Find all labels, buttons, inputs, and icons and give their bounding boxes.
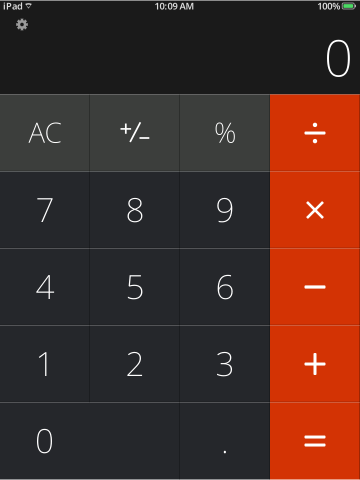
staticText: 1 xyxy=(35,341,54,385)
staticText: 4 xyxy=(35,264,54,308)
button[interactable]: AC xyxy=(0,94,90,171)
button[interactable]: 0 xyxy=(0,402,180,479)
button[interactable]: 8 xyxy=(90,171,180,248)
button[interactable]: 3 xyxy=(180,325,270,402)
button[interactable]: 6 xyxy=(180,248,270,325)
button[interactable]: 5 xyxy=(90,248,180,325)
button[interactable]: 7 xyxy=(0,171,90,248)
button[interactable]: . xyxy=(180,402,270,479)
staticText: 6 xyxy=(215,264,234,308)
button[interactable] xyxy=(270,325,360,402)
staticText: 100% xyxy=(317,0,340,12)
button[interactable] xyxy=(270,171,360,248)
staticText: 0 xyxy=(35,418,54,462)
button[interactable] xyxy=(270,402,360,479)
staticText: . xyxy=(221,418,229,462)
staticText: 10:09 AM xyxy=(155,0,195,12)
button[interactable]: % xyxy=(180,94,270,171)
staticText: iPad xyxy=(3,0,23,12)
button[interactable] xyxy=(270,248,360,325)
button[interactable]: 4 xyxy=(0,248,90,325)
staticText: 2 xyxy=(125,341,144,385)
staticText: 9 xyxy=(215,187,234,231)
staticText: 7 xyxy=(35,187,54,231)
staticText: % xyxy=(214,113,236,151)
button[interactable] xyxy=(90,94,180,171)
button[interactable]: 9 xyxy=(180,171,270,248)
staticText: 5 xyxy=(125,264,144,308)
button[interactable] xyxy=(270,94,360,171)
button[interactable]: 1 xyxy=(0,325,90,402)
button[interactable]: Settings xyxy=(0,0,36,38)
button[interactable]: 2 xyxy=(90,325,180,402)
staticText: 0 xyxy=(324,23,353,90)
staticText: AC xyxy=(28,113,61,151)
staticText: 8 xyxy=(125,187,144,231)
staticText: 3 xyxy=(215,341,234,385)
